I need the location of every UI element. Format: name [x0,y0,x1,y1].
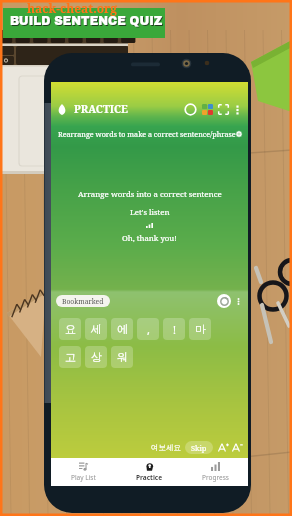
button[interactable]: Puzzle pieces [202,104,213,115]
staticText: 여보세요 [151,443,181,452]
staticText: Play List [71,473,96,482]
staticText: Arrange words into a correct sentence [78,189,222,200]
staticText: Oh, thank you! [122,233,177,244]
staticText: 고 [65,350,76,364]
staticText: , [147,322,150,337]
staticText: Progress [202,473,229,482]
button[interactable]: Increase font size [218,442,229,453]
button[interactable]: Practice [116,458,182,486]
staticText: BUILD SENTENCE QUIZ [11,16,164,29]
staticText: PRACTICE [74,102,128,116]
button[interactable]: Fullscreen [218,104,229,115]
staticText: Skip [191,443,207,453]
button[interactable]: Play List [51,458,116,486]
button[interactable]: Decrease font size [232,442,243,453]
staticText: 세 [91,322,102,336]
button[interactable]: Settings [236,130,242,138]
staticText: 워 [117,350,128,364]
button[interactable]: Bookmarked [56,295,110,307]
button[interactable]: Skip [185,441,213,454]
button[interactable]: 요 [59,318,81,340]
staticText: Bookmarked [62,297,104,306]
staticText: Let's listen [130,207,170,218]
button[interactable]: 에 [111,318,133,340]
staticText: ! [173,322,176,337]
button[interactable]: Record [184,103,197,116]
staticText: 상 [91,350,102,364]
button[interactable]: More options [233,104,242,115]
staticText: 마 [195,322,206,336]
button[interactable]: 고 [59,346,81,368]
staticText: hack-cheat.org [27,0,118,16]
staticText: 에 [117,322,128,336]
button[interactable]: ! [163,318,185,340]
staticText: BUILD SENTENCE QUIZ [10,15,163,28]
button[interactable]: Progress [182,458,248,486]
button[interactable]: 마 [189,318,211,340]
button[interactable]: , [137,318,159,340]
button[interactable]: Replay audio [217,294,231,308]
staticText: 요 [65,322,76,336]
button[interactable]: More options [233,296,244,307]
button[interactable]: 세 [85,318,107,340]
button[interactable]: 상 [85,346,107,368]
staticText: Practice [136,473,163,482]
staticText: Rearrange words to make a correct senten… [58,129,236,139]
button[interactable]: 워 [111,346,133,368]
